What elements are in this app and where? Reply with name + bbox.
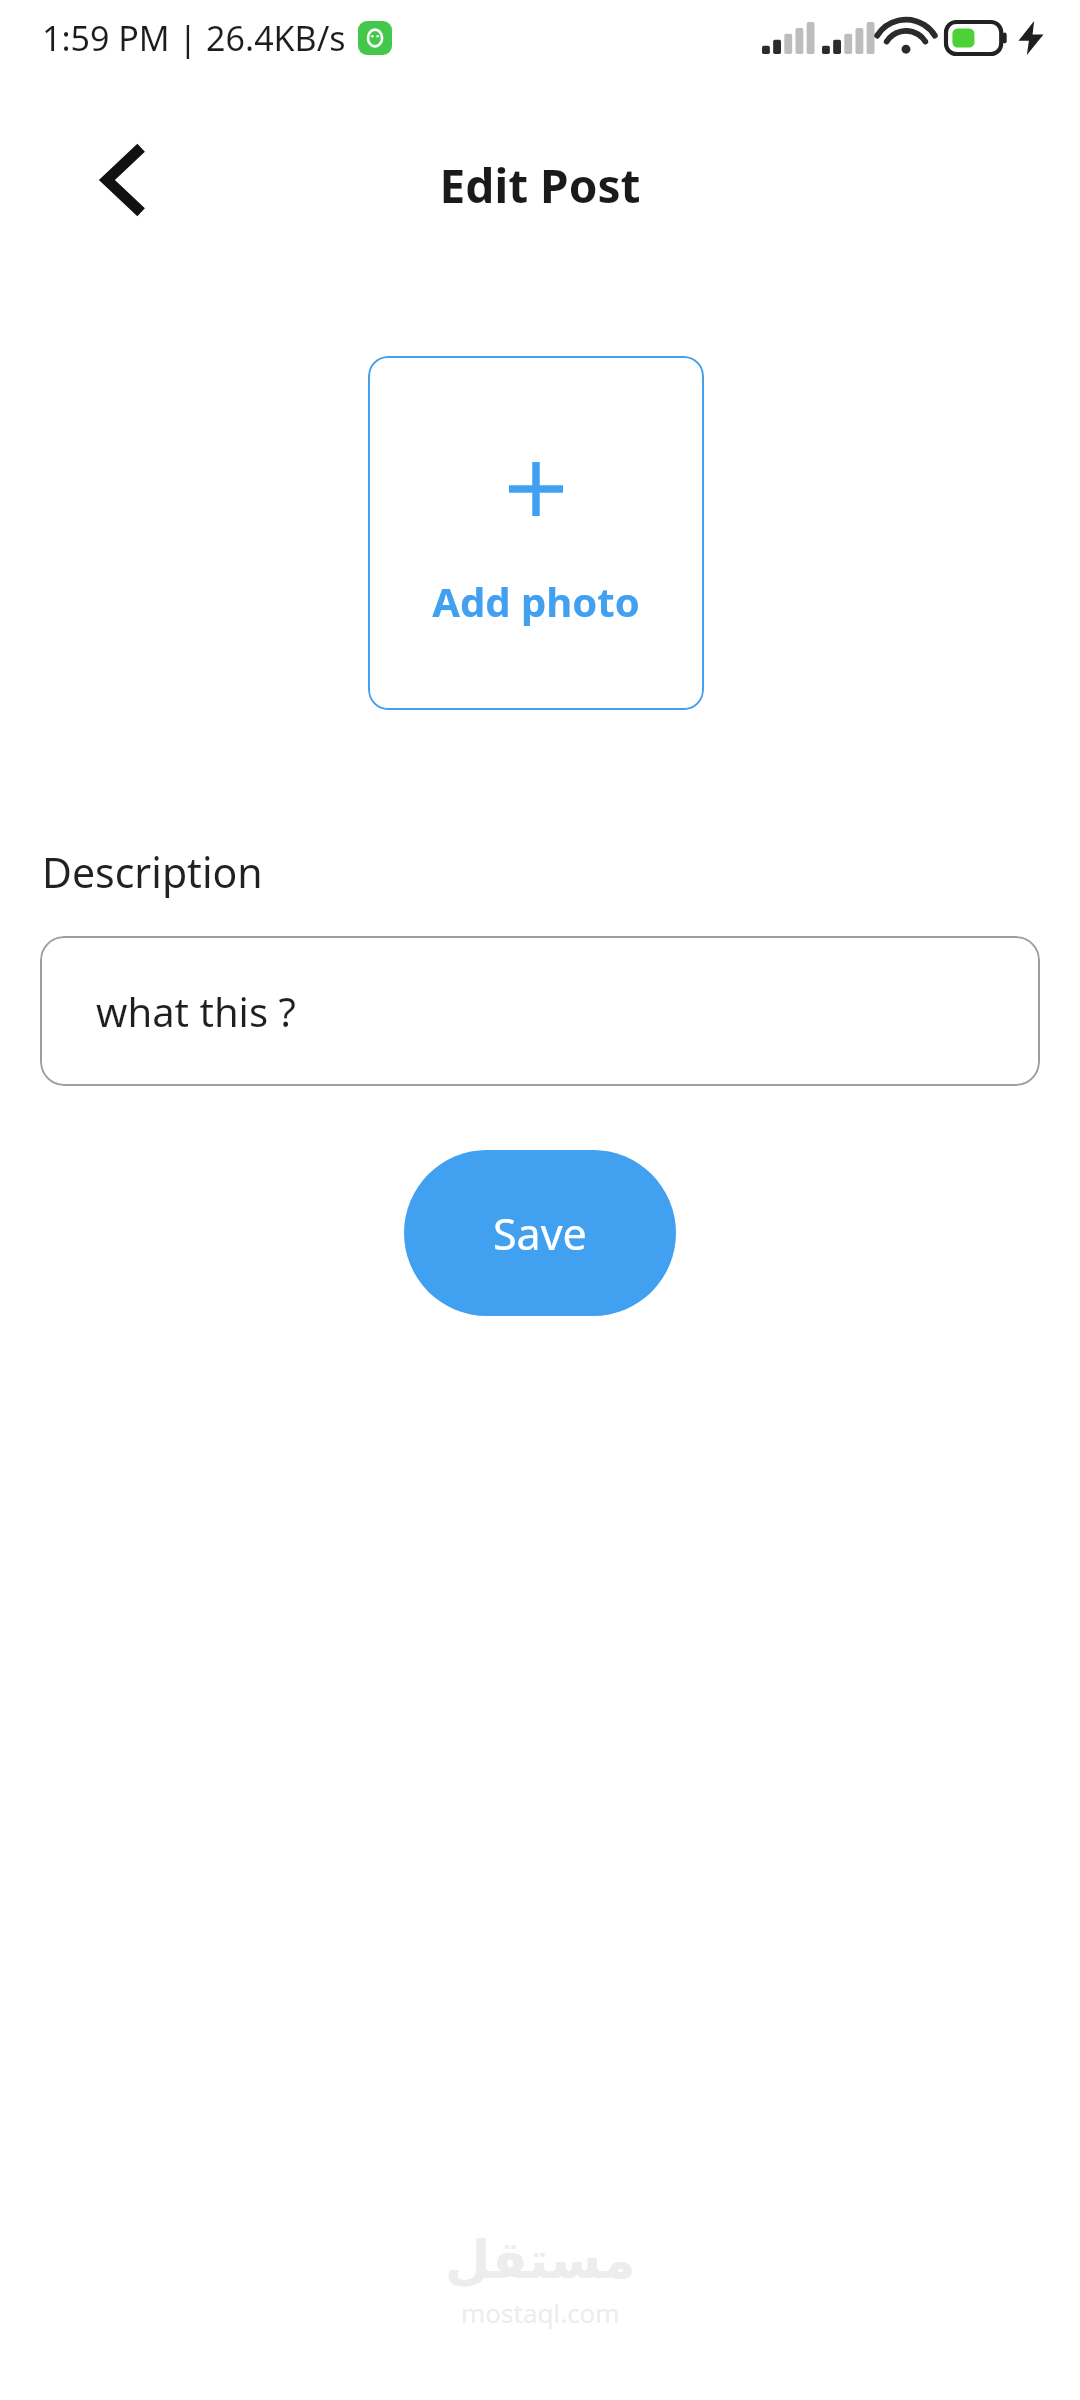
button[interactable]: Save	[404, 1150, 676, 1316]
button[interactable]: Back	[72, 130, 172, 230]
staticText: Edit Post	[0, 154, 1080, 217]
staticText: Save	[493, 1204, 587, 1263]
staticText: Description	[42, 844, 263, 900]
button[interactable]: Add photo	[368, 356, 704, 710]
button[interactable]: what this ?	[40, 936, 1040, 1086]
staticText: Add photo	[368, 574, 704, 628]
staticText: mostaql.com	[461, 2295, 620, 2330]
staticText: مستقل	[445, 2230, 636, 2291]
staticText: what this ?	[96, 984, 296, 1038]
staticText: 1:59 PM | 26.4KB/s	[42, 15, 346, 61]
